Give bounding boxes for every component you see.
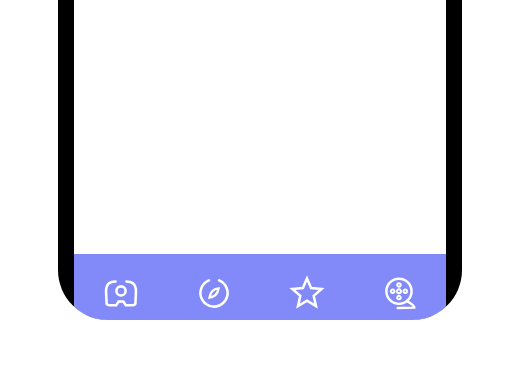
- button[interactable]: Explore: [167, 254, 260, 320]
- button[interactable]: Favorites: [260, 254, 353, 320]
- button[interactable]: Movies: [353, 254, 446, 320]
- button[interactable]: Games: [74, 254, 167, 320]
